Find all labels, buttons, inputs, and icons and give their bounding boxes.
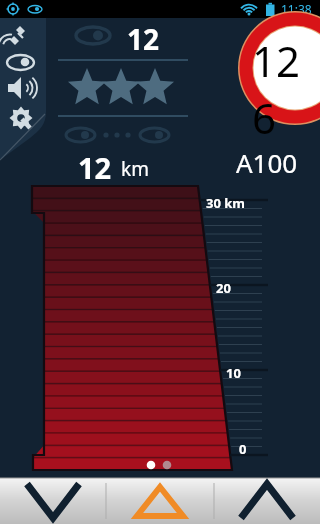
button[interactable]: Navigation menu [0, 18, 46, 160]
button[interactable]: Road A100 [236, 140, 320, 178]
button[interactable]: Scroll down [0, 478, 106, 524]
button[interactable]: Speed cameras 12 [56, 18, 196, 60]
button[interactable]: Scroll up [214, 478, 320, 524]
button[interactable]: Speed limit 126 [239, 12, 320, 124]
button[interactable]: Rating three stars [56, 62, 196, 114]
button[interactable]: Warning [106, 478, 214, 524]
button[interactable]: Distance 12 kilometers [56, 120, 186, 178]
